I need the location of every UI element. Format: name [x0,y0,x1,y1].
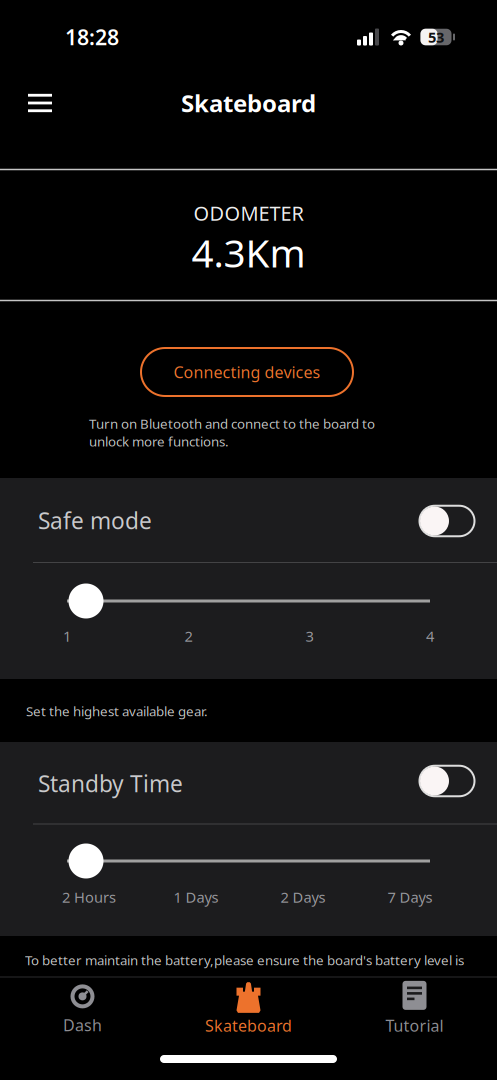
staticText: Set the highest available gear. [26,702,208,720]
staticText: 2 Hours [62,887,116,907]
staticText: 3 [305,626,313,646]
button[interactable]: Tutorial [385,981,443,1036]
staticText: Standby Time [38,768,183,798]
staticText: Skateboard [205,1015,292,1036]
staticText: 7 Days [387,887,432,907]
staticText: Safe mode [38,505,152,535]
button[interactable]: Skateboard [205,982,292,1036]
staticText: 2 Days [280,887,325,907]
staticText: Tutorial [385,1015,443,1036]
button[interactable]: Dash [63,984,102,1036]
staticText: 1 [63,626,71,646]
staticText: 53 [428,27,444,47]
staticText: 4.3Km [191,227,305,278]
staticText: Dash [63,1014,102,1036]
staticText: 2 [184,626,192,646]
button[interactable]: Menu [28,94,52,112]
staticText: 4 [426,626,434,646]
staticText: Connecting devices [173,361,320,383]
staticText: 18:28 [65,23,119,51]
staticText: Skateboard [181,87,316,119]
staticText: To better maintain the battery,please en… [25,951,464,969]
button[interactable]: Standby Time [418,765,475,797]
staticText: ODOMETER [193,200,303,226]
button[interactable]: Connecting devices [140,347,354,397]
staticText: 1 Days [173,887,218,907]
button[interactable]: Safe mode [418,505,475,537]
staticText: Turn on Bluetooth and connect to the boa… [89,415,375,450]
